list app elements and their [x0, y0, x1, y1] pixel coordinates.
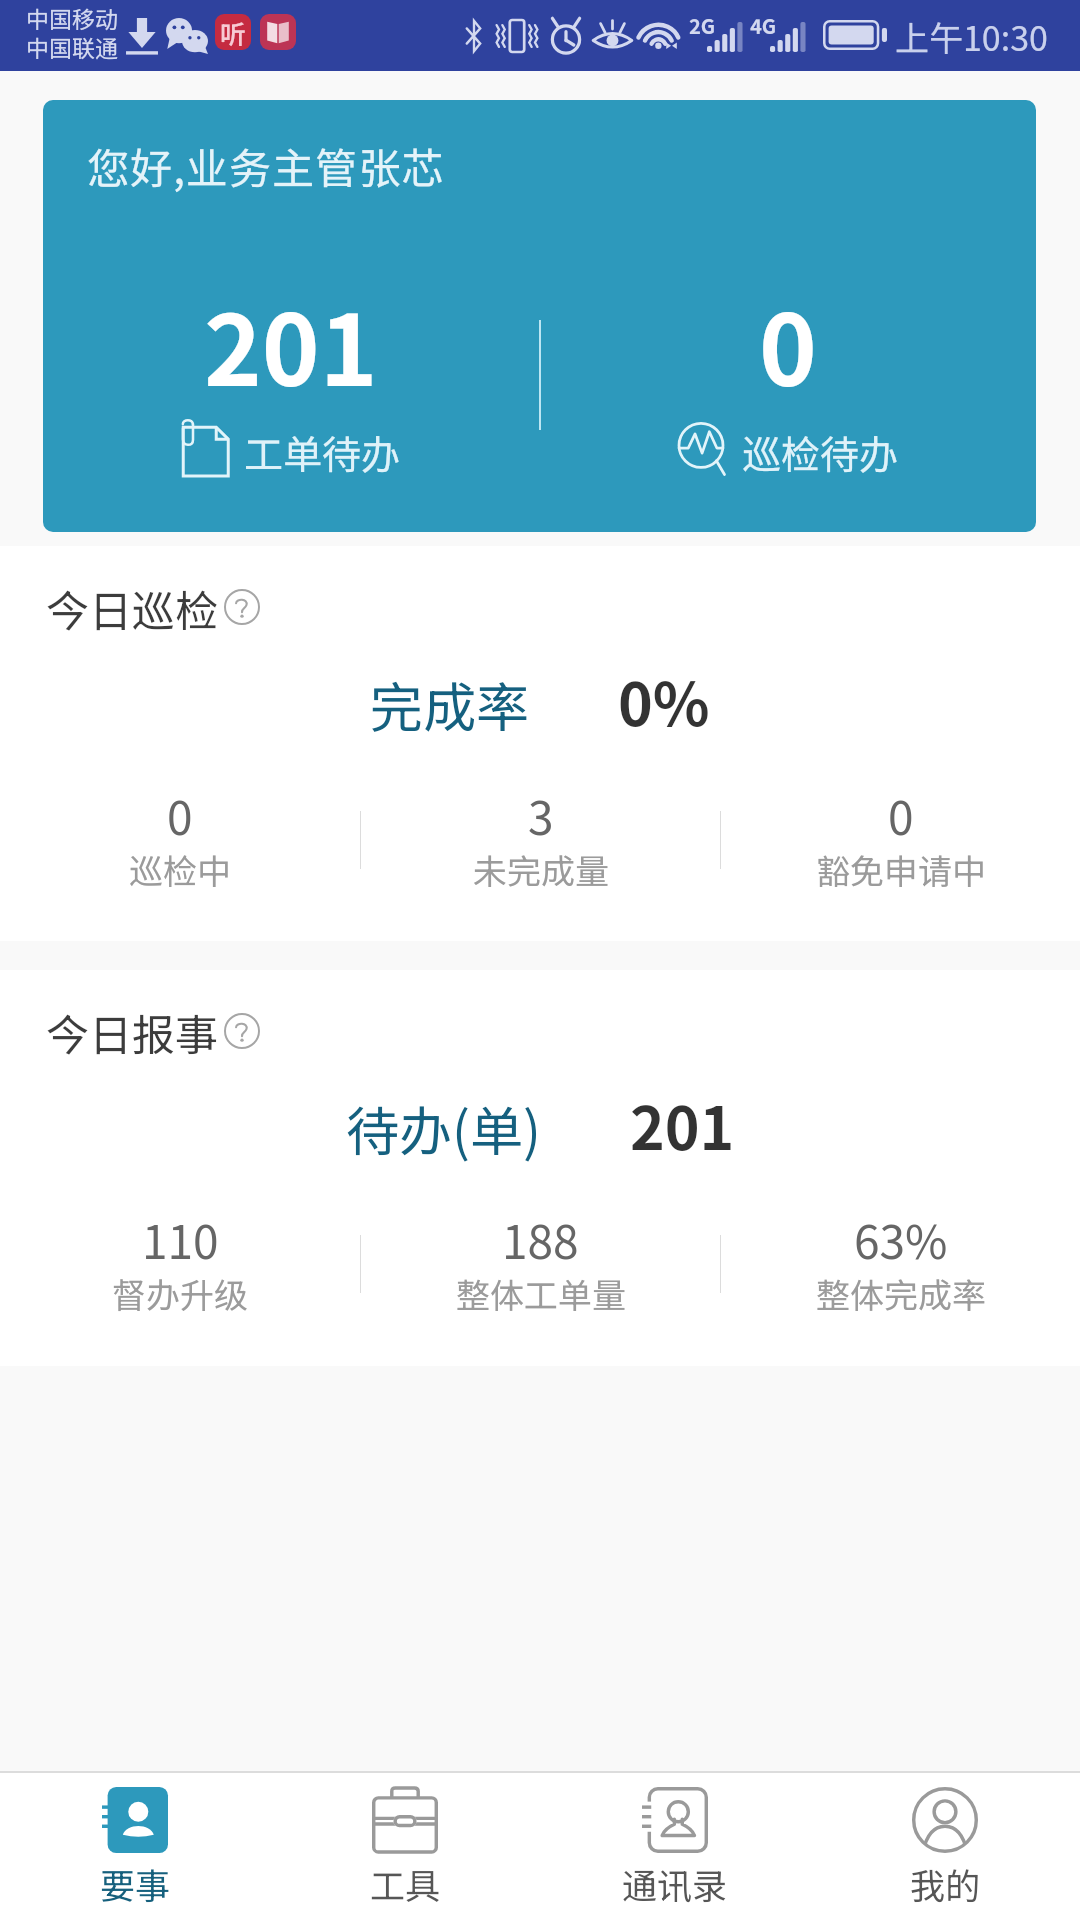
staticText: 完成率	[370, 666, 529, 743]
button[interactable]: 3	[361, 782, 720, 898]
staticText: 督办升级	[112, 1269, 248, 1318]
button[interactable]: 工具	[270, 1773, 540, 1920]
staticText: 豁免申请中	[816, 845, 986, 894]
button[interactable]: 关于今日巡检	[224, 589, 260, 625]
button[interactable]: 通讯录	[540, 1773, 810, 1920]
button[interactable]: 0	[540, 272, 1036, 532]
staticText: 整体工单量	[456, 1269, 626, 1318]
staticText: 中国联通	[26, 30, 118, 63]
staticText: 工单待办	[244, 424, 401, 480]
button[interactable]: 188	[361, 1206, 720, 1322]
staticText: 0	[167, 782, 193, 849]
staticText: 您好,业务主管张芯	[87, 135, 445, 196]
staticText: 整体完成率	[816, 1269, 986, 1318]
staticText: 通讯录	[622, 1858, 728, 1909]
button[interactable]: 今日巡检	[46, 577, 218, 639]
staticText: 巡检待办	[742, 424, 899, 480]
staticText: 201	[630, 1082, 735, 1167]
staticText: 188	[502, 1206, 579, 1273]
staticText: 201	[204, 272, 378, 414]
staticText: 要事	[100, 1858, 171, 1909]
staticText: 4G	[750, 11, 777, 40]
staticText: 0	[888, 782, 914, 849]
staticText: 0	[759, 272, 817, 414]
staticText: 听	[220, 14, 247, 50]
button[interactable]: 0	[721, 782, 1080, 898]
staticText: 中国移动	[26, 1, 118, 34]
staticText: 3	[528, 782, 554, 849]
staticText: 巡检中	[129, 845, 231, 894]
staticText: 工具	[370, 1858, 441, 1909]
button[interactable]: 今日报事	[46, 1001, 218, 1063]
staticText: 0%	[618, 658, 710, 743]
button[interactable]: 关于今日报事	[224, 1013, 260, 1049]
staticText: 我的	[910, 1858, 981, 1909]
button[interactable]: 要事	[0, 1773, 270, 1920]
staticText: 今日报事	[46, 1001, 218, 1063]
button[interactable]: 0	[0, 782, 360, 898]
button[interactable]: 我的	[810, 1773, 1080, 1920]
staticText: 2G	[689, 11, 716, 40]
staticText: 110	[142, 1206, 219, 1273]
button[interactable]: 您好,业务主管张芯	[43, 100, 1036, 532]
staticText: 未完成量	[473, 845, 609, 894]
staticText: 今日巡检	[46, 577, 218, 639]
button[interactable]: 110	[0, 1206, 360, 1322]
staticText: 63%	[854, 1206, 948, 1273]
staticText: 上午10:30	[895, 12, 1048, 61]
button[interactable]: 63%	[721, 1206, 1080, 1322]
button[interactable]: 201	[43, 272, 538, 532]
staticText: 待办(单)	[346, 1090, 541, 1167]
